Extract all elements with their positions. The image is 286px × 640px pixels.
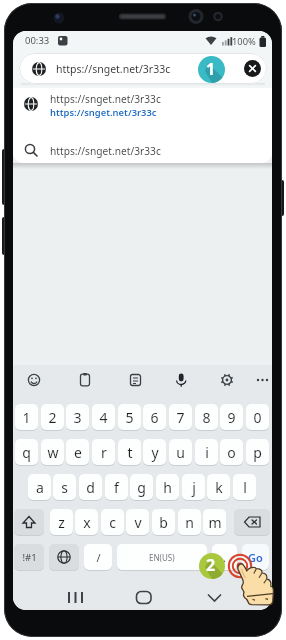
button[interactable]: r bbox=[92, 439, 115, 465]
button[interactable]: p bbox=[246, 439, 269, 465]
staticText: 00:33 bbox=[25, 34, 50, 47]
staticText: a bbox=[36, 478, 44, 497]
button[interactable]: n bbox=[178, 509, 201, 535]
staticText: u bbox=[176, 443, 185, 462]
button[interactable] bbox=[22, 368, 46, 392]
staticText: e bbox=[74, 443, 82, 462]
button[interactable] bbox=[49, 544, 79, 570]
button[interactable]: c bbox=[101, 509, 124, 535]
button[interactable]: 4 bbox=[92, 404, 115, 430]
button[interactable]: u bbox=[169, 439, 192, 465]
button[interactable]: g bbox=[130, 474, 153, 500]
staticText: 1 bbox=[206, 58, 216, 80]
staticText: EN(US) bbox=[149, 552, 175, 563]
staticText: n bbox=[185, 513, 194, 532]
button[interactable]: . bbox=[212, 544, 237, 570]
button[interactable]: w bbox=[41, 439, 64, 465]
staticText: 3 bbox=[73, 408, 82, 427]
staticText: 100% bbox=[232, 35, 256, 48]
staticText: m bbox=[208, 513, 222, 532]
button[interactable]: m bbox=[203, 509, 226, 535]
button[interactable]: https://snget.net/3r33c bbox=[13, 132, 272, 163]
button[interactable]: 3 bbox=[66, 404, 89, 430]
button[interactable] bbox=[244, 60, 261, 77]
button[interactable]: f bbox=[105, 474, 128, 500]
staticText: f bbox=[114, 478, 119, 497]
button[interactable]: d bbox=[79, 474, 102, 500]
staticText: 1 bbox=[22, 408, 31, 427]
button[interactable]: https://snget.net/3r33c bbox=[13, 88, 272, 127]
staticText: https://snget.net/3r33c bbox=[50, 144, 161, 158]
staticText: https://snget.net/3r33c bbox=[50, 92, 161, 106]
button[interactable] bbox=[201, 584, 229, 610]
button[interactable] bbox=[123, 368, 147, 392]
staticText: w bbox=[47, 443, 59, 462]
button[interactable]: 9 bbox=[220, 404, 243, 430]
button[interactable]: h bbox=[156, 474, 179, 500]
button[interactable] bbox=[14, 509, 44, 535]
button[interactable]: i bbox=[195, 439, 218, 465]
staticText: https://snget.net/3r33c bbox=[56, 62, 171, 76]
staticText: k bbox=[215, 478, 223, 497]
button[interactable]: e bbox=[66, 439, 89, 465]
staticText: x bbox=[83, 513, 91, 532]
staticText: https://snget.net/3r33c bbox=[50, 106, 157, 119]
button[interactable]: o bbox=[220, 439, 243, 465]
staticText: Go bbox=[248, 550, 263, 565]
button[interactable]: a bbox=[28, 474, 51, 500]
button[interactable] bbox=[130, 584, 158, 610]
button[interactable] bbox=[215, 368, 239, 392]
button[interactable]: Go bbox=[242, 544, 269, 570]
button[interactable]: EN(US) bbox=[117, 544, 207, 570]
staticText: s bbox=[61, 478, 68, 497]
staticText: 9 bbox=[227, 408, 236, 427]
button[interactable]: j bbox=[182, 474, 205, 500]
button[interactable] bbox=[234, 509, 270, 535]
staticText: v bbox=[134, 513, 142, 532]
button[interactable] bbox=[73, 368, 97, 392]
staticText: d bbox=[86, 478, 95, 497]
staticText: . bbox=[223, 550, 226, 565]
button[interactable]: q bbox=[15, 439, 38, 465]
staticText: 2 bbox=[48, 408, 57, 427]
staticText: 5 bbox=[125, 408, 134, 427]
staticText: y bbox=[151, 443, 159, 462]
staticText: q bbox=[22, 443, 31, 462]
button[interactable]: k bbox=[207, 474, 230, 500]
button[interactable]: / bbox=[84, 544, 112, 570]
staticText: 8 bbox=[202, 408, 211, 427]
button[interactable]: y bbox=[143, 439, 166, 465]
button[interactable]: s bbox=[53, 474, 76, 500]
staticText: 6 bbox=[150, 408, 159, 427]
button[interactable]: 0 bbox=[246, 404, 269, 430]
button[interactable]: v bbox=[126, 509, 149, 535]
staticText: c bbox=[109, 513, 116, 532]
button[interactable]: b bbox=[152, 509, 175, 535]
button[interactable]: l bbox=[233, 474, 256, 500]
button[interactable]: 1 bbox=[15, 404, 38, 430]
button[interactable]: https://snget.net/3r33c bbox=[19, 53, 267, 84]
button[interactable]: t bbox=[118, 439, 141, 465]
staticText: 7 bbox=[176, 408, 185, 427]
button[interactable] bbox=[169, 368, 193, 392]
staticText: z bbox=[58, 513, 65, 532]
button[interactable]: 8 bbox=[195, 404, 218, 430]
button[interactable]: !#1 bbox=[14, 544, 44, 570]
staticText: p bbox=[253, 443, 262, 462]
staticText: b bbox=[159, 513, 168, 532]
button[interactable]: 5 bbox=[118, 404, 141, 430]
staticText: i bbox=[205, 443, 209, 462]
staticText: l bbox=[243, 478, 247, 497]
button[interactable] bbox=[61, 584, 89, 610]
staticText: o bbox=[227, 443, 236, 462]
staticText: 2 bbox=[206, 554, 216, 576]
button[interactable] bbox=[250, 368, 272, 392]
button[interactable]: 7 bbox=[169, 404, 192, 430]
staticText: g bbox=[137, 478, 146, 497]
button[interactable]: 2 bbox=[41, 404, 64, 430]
staticText: j bbox=[192, 478, 196, 497]
button[interactable]: 6 bbox=[143, 404, 166, 430]
button[interactable]: x bbox=[75, 509, 98, 535]
button[interactable]: z bbox=[50, 509, 73, 535]
staticText: h bbox=[163, 478, 172, 497]
